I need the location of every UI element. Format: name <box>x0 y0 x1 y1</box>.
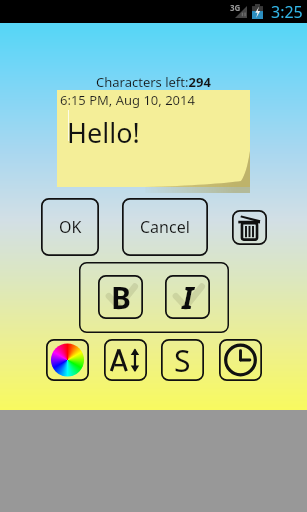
staticText: Characters left:294 <box>96 73 211 91</box>
staticText: Cancel <box>140 216 190 238</box>
staticText: I <box>182 277 194 318</box>
button[interactable]: S <box>161 339 204 381</box>
button[interactable]: Delete <box>232 210 267 245</box>
staticText: S <box>174 340 191 381</box>
button[interactable]: Timestamp <box>219 339 262 381</box>
button[interactable]: Cancel <box>122 198 208 256</box>
staticText: B <box>111 277 131 318</box>
staticText: Hello! <box>67 114 140 151</box>
button[interactable]: B <box>98 275 143 319</box>
button[interactable]: Color <box>46 339 89 381</box>
button[interactable]: Font size <box>104 339 147 381</box>
staticText: 6:15 PM, Aug 10, 2014 <box>60 91 195 109</box>
button[interactable]: I <box>165 275 210 319</box>
button[interactable]: OK <box>41 198 99 256</box>
staticText: 3:25 <box>271 1 303 23</box>
button[interactable]: 6:15 PM, Aug 10, 2014 <box>57 90 250 187</box>
staticText: OK <box>59 216 82 238</box>
staticText: 3G <box>230 2 241 13</box>
